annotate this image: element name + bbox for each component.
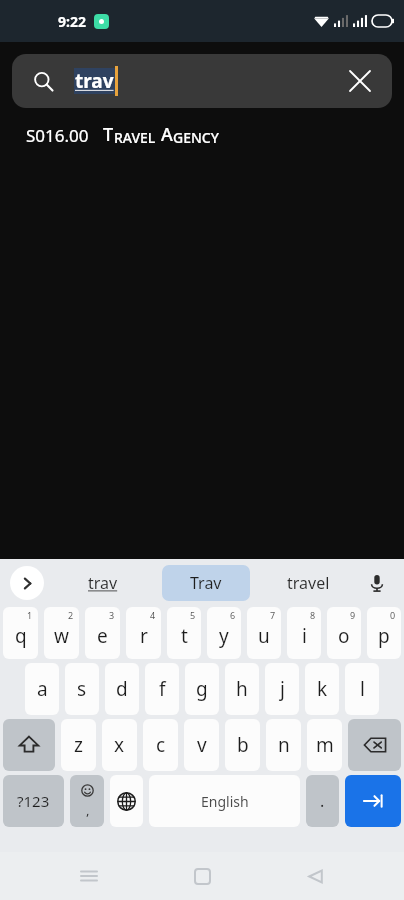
button[interactable]: Back xyxy=(291,852,339,900)
staticText: 9:22 xyxy=(58,12,86,31)
button[interactable]: p xyxy=(367,607,401,659)
staticText: w xyxy=(54,623,69,649)
button[interactable]: s xyxy=(65,663,99,715)
staticText: t xyxy=(181,623,188,649)
staticText: trav xyxy=(75,68,114,94)
button[interactable]: r xyxy=(126,607,161,659)
button[interactable]: Recents xyxy=(65,852,113,900)
staticText: RAVEL xyxy=(114,128,156,147)
button[interactable]: k xyxy=(305,663,339,715)
button[interactable]: x xyxy=(102,719,137,771)
button[interactable]: y xyxy=(207,607,241,659)
staticText: u xyxy=(258,623,270,649)
button[interactable]: g xyxy=(185,663,219,715)
button[interactable]: Change language xyxy=(110,775,143,827)
staticText: , xyxy=(86,801,90,819)
staticText: 8 xyxy=(310,609,316,621)
staticText: f xyxy=(159,676,166,702)
button[interactable]: ?123 xyxy=(3,775,64,827)
staticText: z xyxy=(74,732,83,758)
staticText: 2 xyxy=(68,609,74,621)
staticText: 9 xyxy=(350,609,356,621)
button[interactable]: b xyxy=(225,719,260,771)
button[interactable]: n xyxy=(266,719,301,771)
button[interactable]: e xyxy=(85,607,120,659)
staticText: e xyxy=(97,623,108,649)
staticText: ?123 xyxy=(17,791,50,811)
button[interactable]: Expand toolbar xyxy=(10,566,44,600)
button[interactable]: a xyxy=(25,663,59,715)
staticText: . xyxy=(320,790,325,812)
staticText: trav xyxy=(88,572,118,594)
button[interactable]: Emoji and comma xyxy=(70,775,104,827)
staticText: s xyxy=(77,676,87,702)
staticText: Trav xyxy=(190,572,222,594)
staticText: d xyxy=(116,676,128,702)
staticText: q xyxy=(15,623,27,649)
button[interactable]: Shift xyxy=(3,719,55,771)
button[interactable]: Search xyxy=(28,66,58,96)
staticText: GENCY xyxy=(173,128,219,147)
button[interactable]: . xyxy=(306,775,339,827)
button[interactable]: j xyxy=(265,663,299,715)
staticText: l xyxy=(360,676,365,702)
button[interactable]: Voice input xyxy=(362,568,392,598)
staticText: 7 xyxy=(270,609,276,621)
staticText: a xyxy=(37,676,48,702)
button[interactable]: m xyxy=(307,719,342,771)
staticText: b xyxy=(237,732,249,758)
staticText: y xyxy=(219,623,229,649)
button[interactable]: u xyxy=(247,607,281,659)
staticText: 3 xyxy=(109,609,115,621)
button[interactable]: q xyxy=(3,607,38,659)
button[interactable]: i xyxy=(287,607,321,659)
button[interactable]: Home xyxy=(178,852,226,900)
staticText: r xyxy=(140,623,148,649)
staticText: English xyxy=(201,792,249,811)
button[interactable]: trav xyxy=(52,572,154,594)
button[interactable]: Next xyxy=(345,775,401,827)
staticText: j xyxy=(280,676,285,702)
button[interactable]: Backspace xyxy=(348,719,401,771)
staticText: travel xyxy=(287,572,330,594)
button[interactable]: Search xyxy=(12,54,392,108)
staticText: T xyxy=(103,122,114,147)
staticText: S016.00 xyxy=(26,124,89,147)
staticText: o xyxy=(338,623,350,649)
staticText: h xyxy=(236,676,248,702)
staticText: c xyxy=(156,732,166,758)
staticText: 0 xyxy=(390,609,396,621)
button[interactable]: t xyxy=(167,607,201,659)
button[interactable]: l xyxy=(345,663,379,715)
button[interactable]: o xyxy=(327,607,361,659)
button[interactable]: f xyxy=(145,663,179,715)
button[interactable]: z xyxy=(61,719,96,771)
staticText: i xyxy=(302,623,307,649)
staticText: v xyxy=(197,732,207,758)
staticText: 5 xyxy=(190,609,196,621)
button[interactable]: Clear xyxy=(344,65,376,97)
staticText: p xyxy=(378,623,390,649)
staticText: x xyxy=(114,732,125,758)
staticText: 4 xyxy=(150,609,156,621)
button[interactable]: Trav xyxy=(162,565,250,601)
button[interactable]: English xyxy=(149,775,300,827)
staticText: k xyxy=(317,676,328,702)
staticText: A xyxy=(161,122,173,147)
button[interactable]: travel xyxy=(257,572,360,594)
button[interactable]: d xyxy=(105,663,139,715)
staticText: 6 xyxy=(230,609,236,621)
button[interactable]: c xyxy=(143,719,178,771)
button[interactable]: v xyxy=(184,719,219,771)
staticText: g xyxy=(196,676,208,702)
staticText: m xyxy=(316,732,334,758)
staticText: 1 xyxy=(27,609,33,621)
button[interactable]: h xyxy=(225,663,259,715)
button[interactable]: w xyxy=(44,607,79,659)
staticText: n xyxy=(278,732,290,758)
